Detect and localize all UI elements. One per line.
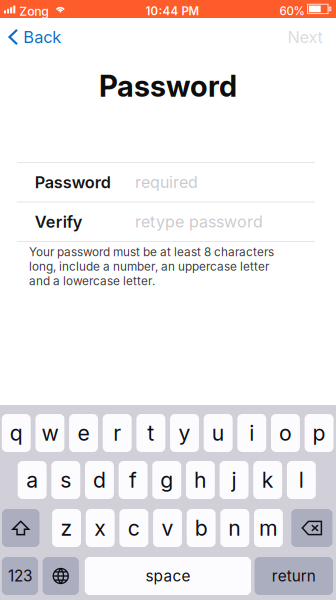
staticText: c [128, 515, 140, 541]
staticText: l [299, 467, 304, 493]
button[interactable]: y [170, 414, 199, 452]
staticText: r [113, 420, 121, 446]
staticText: Next [287, 27, 322, 47]
staticText: Your password must be at least 8 charact… [29, 245, 274, 288]
staticText: z [60, 515, 72, 541]
staticText: return [272, 567, 316, 585]
staticText: 10:44 PM [145, 4, 199, 18]
button[interactable]: Next keyboard [43, 557, 79, 595]
button[interactable]: return [254, 557, 333, 595]
staticText: a [26, 467, 38, 493]
button[interactable]: Delete [291, 509, 332, 547]
staticText: Verify [35, 212, 83, 232]
button[interactable]: r [103, 414, 132, 452]
button[interactable]: b [187, 509, 216, 547]
button[interactable]: t [136, 414, 165, 452]
staticText: q [10, 420, 23, 446]
button[interactable]: q [2, 414, 31, 452]
staticText: x [94, 515, 106, 541]
button[interactable]: Back [0, 22, 71, 52]
staticText: Back [23, 27, 61, 47]
staticText: Zong [19, 4, 49, 19]
staticText: v [161, 515, 173, 541]
staticText: required [135, 173, 198, 192]
staticText: f [129, 467, 137, 493]
staticText: 60% [279, 4, 304, 18]
staticText: k [262, 467, 274, 493]
staticText: m [259, 515, 278, 541]
staticText: space [145, 567, 190, 585]
staticText: p [313, 420, 326, 446]
staticText: Password [35, 172, 111, 192]
staticText: i [249, 420, 254, 446]
button[interactable]: c [119, 509, 148, 547]
button[interactable]: o [271, 414, 300, 452]
button[interactable]: n [220, 509, 249, 547]
staticText: n [228, 515, 241, 541]
button[interactable]: e [69, 414, 98, 452]
button[interactable]: space [85, 557, 251, 595]
staticText: s [60, 467, 71, 493]
staticText: Password [99, 68, 237, 104]
button[interactable]: j [220, 461, 248, 499]
staticText: y [178, 420, 190, 446]
staticText: t [147, 420, 154, 446]
staticText: w [41, 420, 58, 446]
button[interactable]: d [85, 461, 114, 499]
button[interactable]: m [254, 509, 283, 547]
button[interactable]: x [86, 509, 115, 547]
button[interactable]: g [152, 461, 181, 499]
staticText: j [231, 467, 236, 493]
button[interactable]: z [52, 509, 81, 547]
staticText: retype password [135, 212, 263, 231]
staticText: o [279, 420, 292, 446]
staticText: g [160, 467, 173, 493]
button[interactable]: w [35, 414, 64, 452]
staticText: d [93, 467, 106, 493]
button[interactable]: Shift [2, 509, 39, 547]
button[interactable]: i [237, 414, 266, 452]
staticText: e [77, 420, 89, 446]
staticText: u [212, 420, 225, 446]
button[interactable]: p [305, 414, 333, 452]
button[interactable]: f [119, 461, 147, 499]
button[interactable]: v [153, 509, 182, 547]
button[interactable]: Next [277, 22, 332, 52]
button[interactable]: k [253, 461, 282, 499]
staticText: h [194, 467, 207, 493]
button[interactable]: u [204, 414, 233, 452]
staticText: b [195, 515, 208, 541]
button[interactable]: l [287, 461, 316, 499]
button[interactable]: a [18, 461, 47, 499]
staticText: 123 [8, 567, 32, 585]
button[interactable]: h [186, 461, 215, 499]
button[interactable]: s [51, 461, 80, 499]
button[interactable]: 123 [2, 557, 38, 595]
